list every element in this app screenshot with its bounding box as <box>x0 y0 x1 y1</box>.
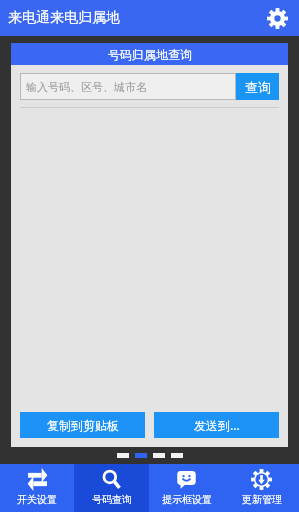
button[interactable]: 号码查询 <box>74 464 149 512</box>
button[interactable]: 发送到... <box>154 412 279 438</box>
button[interactable]: 提示框设置 <box>149 464 224 512</box>
button[interactable]: 查询 <box>236 73 279 100</box>
staticText: 来电通来电归属地 <box>8 9 120 27</box>
staticText: 提示框设置 <box>162 493 212 506</box>
staticText: 号码查询 <box>92 493 132 506</box>
staticText: 开关设置 <box>17 493 57 506</box>
staticText: 发送到... <box>194 417 240 433</box>
button[interactable]: 更新管理 <box>224 464 299 512</box>
button[interactable]: 输入号码、区号、城市名 <box>20 73 236 100</box>
staticText: 号码归属地查询 <box>108 47 192 62</box>
staticText: 更新管理 <box>242 493 282 506</box>
staticText: 查询 <box>245 79 271 95</box>
button[interactable]: 复制到剪贴板 <box>20 412 145 438</box>
staticText: 输入号码、区号、城市名 <box>26 80 147 94</box>
button[interactable]: 开关设置 <box>0 464 74 512</box>
staticText: 复制到剪贴板 <box>47 418 119 433</box>
button[interactable]: Settings <box>263 4 291 32</box>
